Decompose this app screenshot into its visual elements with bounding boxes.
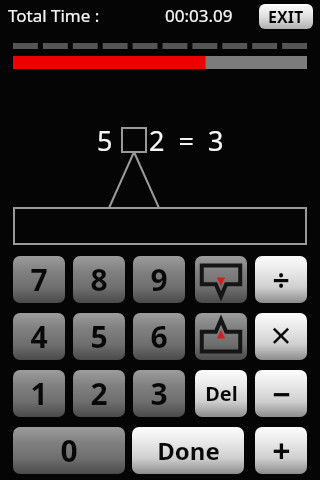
button[interactable]: Done	[132, 427, 244, 474]
button[interactable]: 9	[133, 256, 185, 303]
button[interactable]: ✕	[255, 313, 307, 360]
staticText: 5	[90, 316, 108, 357]
button[interactable]: Raise answer	[195, 313, 247, 360]
button[interactable]: 0	[13, 427, 125, 474]
staticText: 00:03.09	[165, 4, 233, 27]
button[interactable]: 3	[133, 370, 185, 417]
staticText: 0	[60, 430, 78, 471]
staticText: ✕	[269, 320, 293, 353]
staticText: 3	[150, 373, 168, 414]
staticText: 2 = 3	[149, 122, 224, 159]
staticText: 1	[30, 373, 48, 414]
staticText: 4	[30, 316, 48, 357]
button[interactable]: 5	[73, 313, 125, 360]
staticText: 9	[150, 259, 168, 300]
staticText: Done	[157, 434, 220, 467]
staticText: 6	[150, 316, 168, 357]
staticText: 8	[90, 259, 108, 300]
staticText: Del	[205, 380, 238, 407]
staticText: 7	[30, 259, 48, 300]
staticText: 2	[90, 373, 108, 414]
button[interactable]: 2	[73, 370, 125, 417]
button[interactable]: 7	[13, 256, 65, 303]
staticText: −	[272, 372, 291, 416]
staticText: Total Time :	[8, 4, 100, 27]
staticText: 5	[97, 122, 113, 159]
button[interactable]: EXIT	[259, 4, 313, 29]
button[interactable]: 4	[13, 313, 65, 360]
staticText: +	[272, 429, 291, 473]
button[interactable]: ÷	[255, 256, 307, 303]
button[interactable]: Del	[195, 370, 247, 417]
button[interactable]: 1	[13, 370, 65, 417]
button[interactable]: Answer field	[14, 208, 306, 244]
button[interactable]: 6	[133, 313, 185, 360]
staticText: ÷	[272, 259, 290, 300]
button[interactable]: −	[255, 370, 307, 417]
button[interactable]: Lower answer	[195, 256, 247, 303]
button[interactable]: +	[255, 427, 307, 474]
staticText: EXIT	[268, 6, 304, 28]
button[interactable]: 8	[73, 256, 125, 303]
